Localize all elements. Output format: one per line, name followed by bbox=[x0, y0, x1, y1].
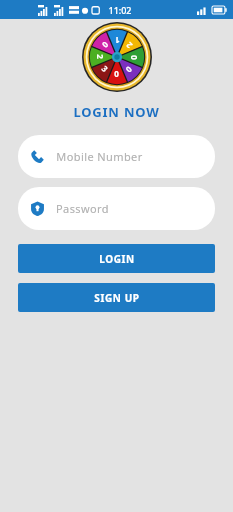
staticText: LOGIN bbox=[99, 252, 135, 266]
staticText: 11:02 bbox=[108, 4, 132, 16]
staticText: 0 bbox=[114, 68, 119, 79]
button[interactable]: Mobile Number bbox=[18, 135, 215, 178]
button[interactable]: LOGIN bbox=[18, 244, 215, 273]
staticText: 2 bbox=[95, 54, 106, 59]
staticText: 1 bbox=[115, 35, 120, 46]
staticText: Password bbox=[56, 201, 109, 216]
staticText: SIGN UP bbox=[94, 291, 140, 305]
staticText: 0 bbox=[123, 63, 134, 75]
staticText: 0 bbox=[100, 39, 111, 51]
button[interactable]: Password bbox=[18, 187, 215, 230]
other: App logo spin wheel bbox=[82, 22, 152, 92]
staticText: Mobile Number bbox=[56, 149, 143, 164]
staticText: 0 bbox=[128, 55, 139, 60]
button[interactable]: SIGN UP bbox=[18, 283, 215, 312]
staticText: 2 bbox=[123, 40, 135, 51]
staticText: 3 bbox=[99, 63, 111, 74]
staticText: LOGIN NOW bbox=[73, 103, 160, 121]
